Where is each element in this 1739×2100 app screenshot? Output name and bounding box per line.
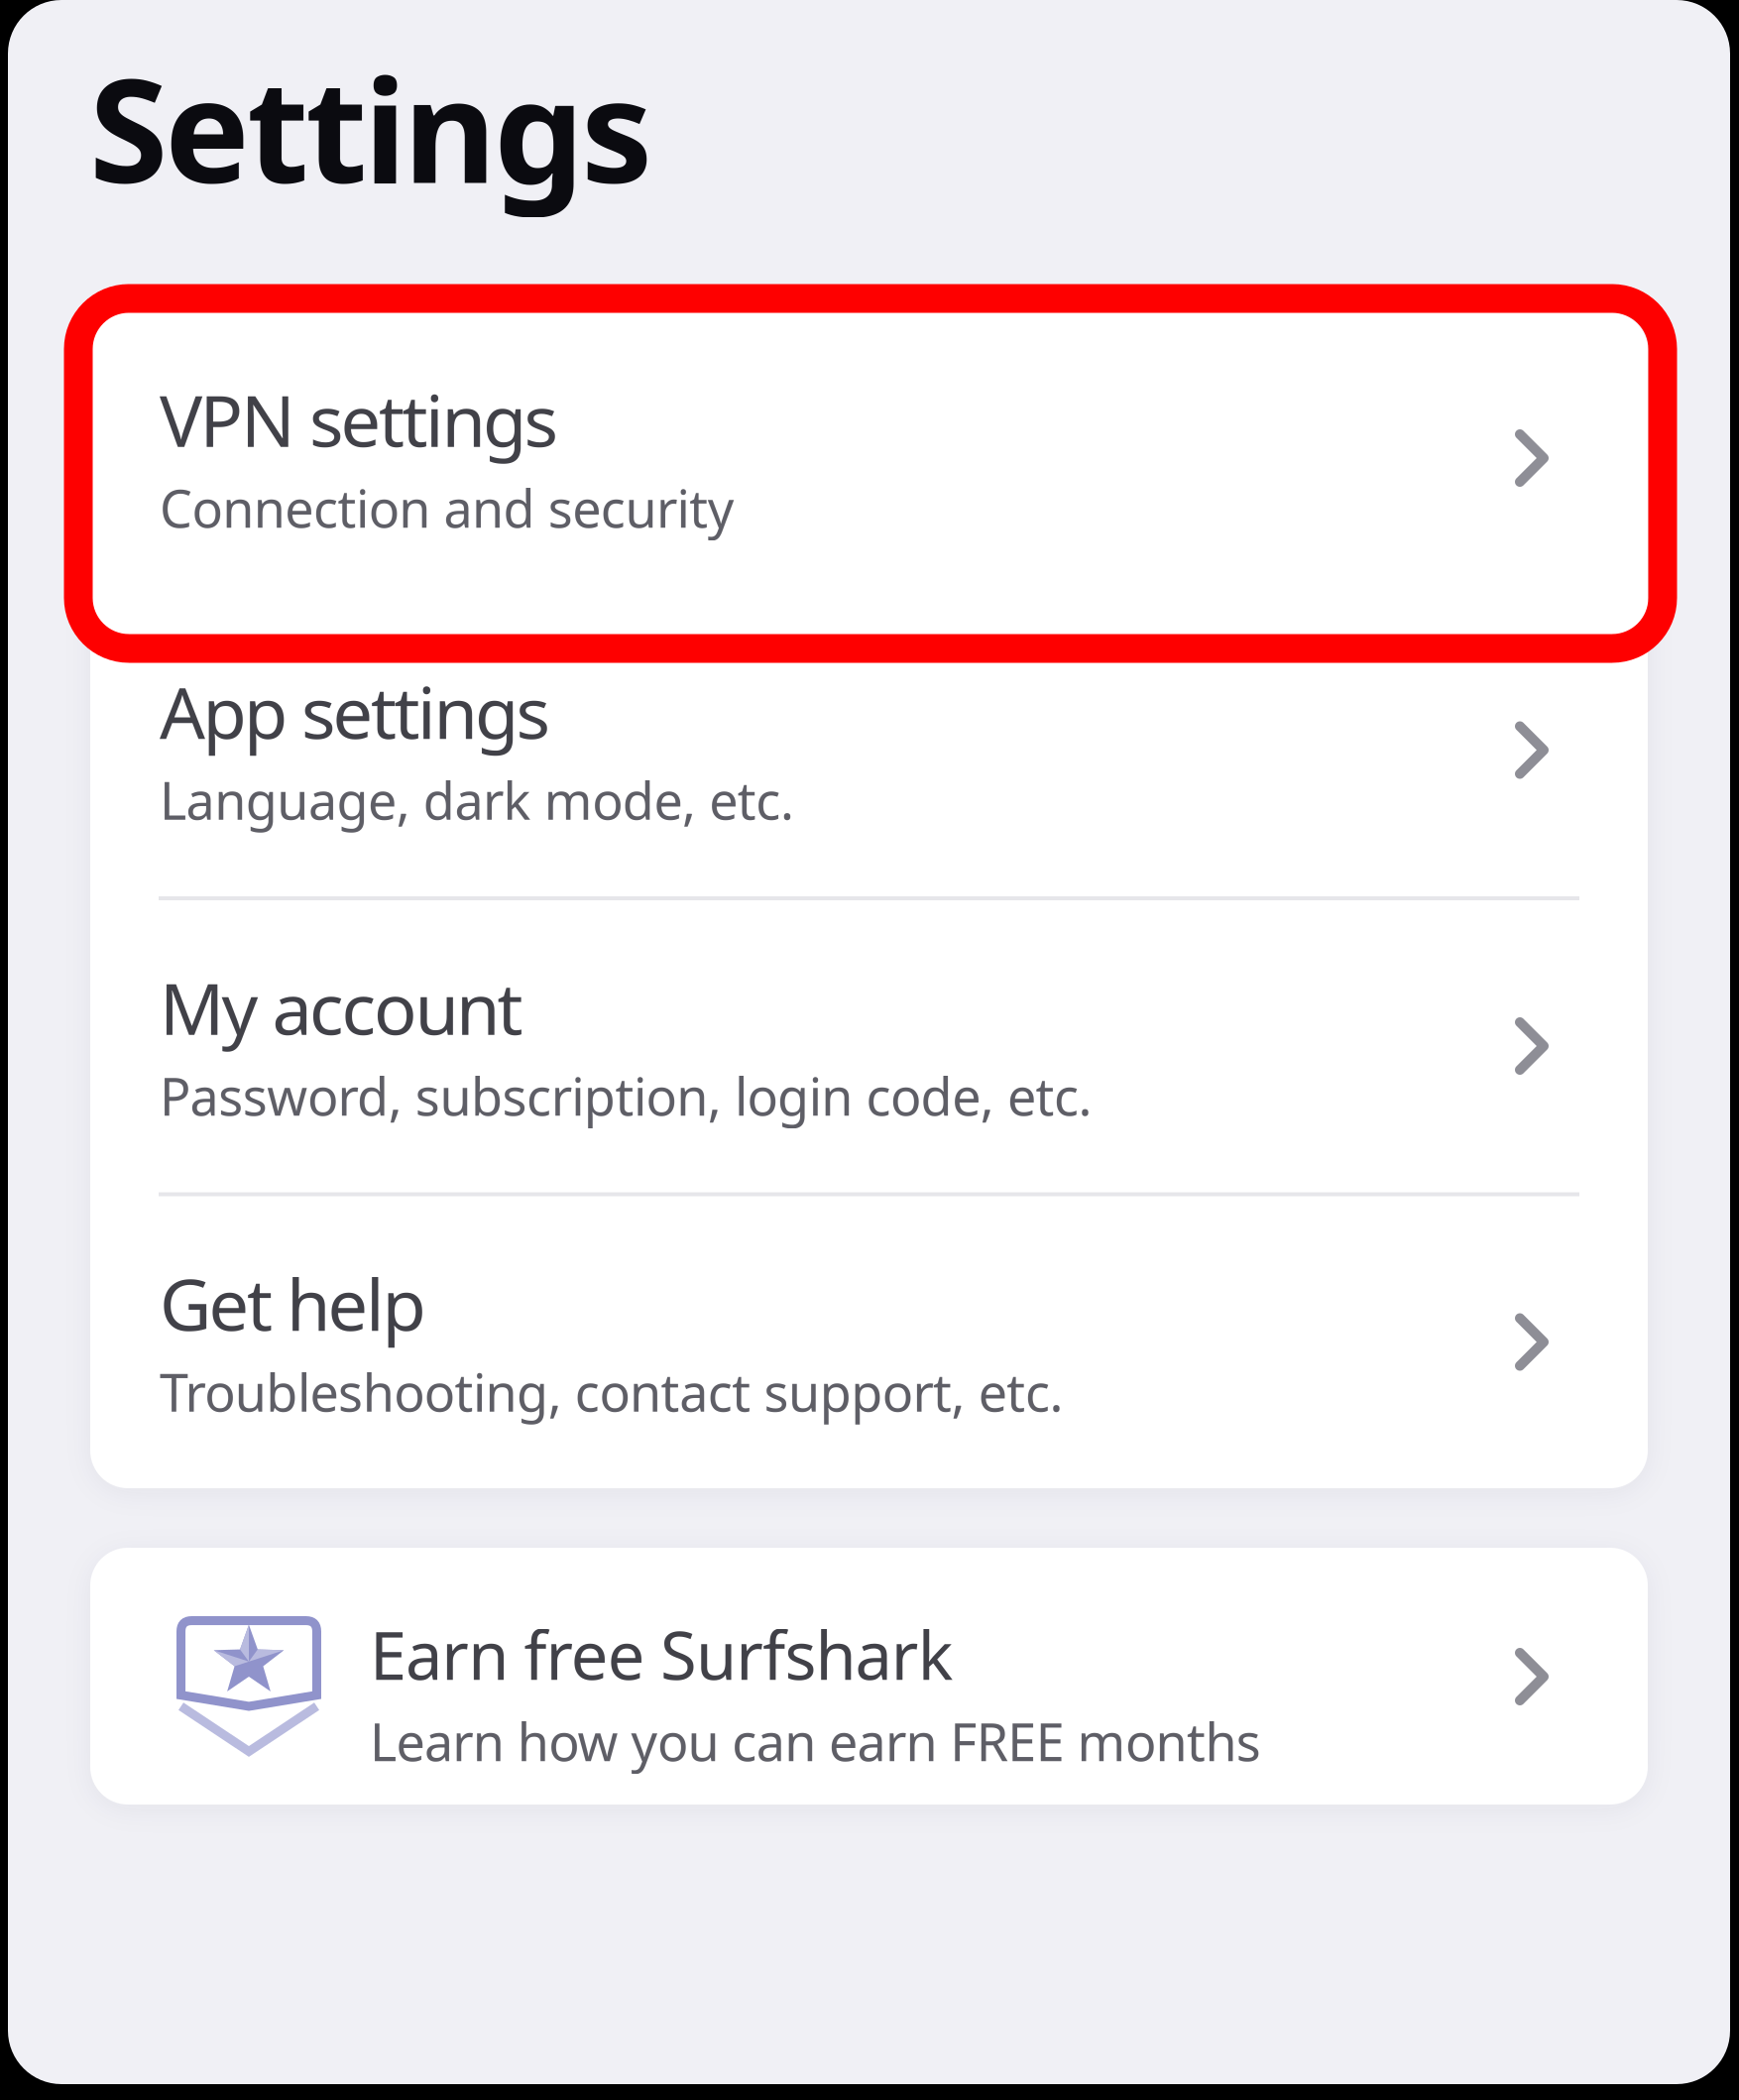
button[interactable]: Earn free Surfshark	[90, 1548, 1648, 1805]
staticText: Learn how you can earn FREE months	[370, 1707, 1261, 1775]
staticText: My account	[160, 960, 523, 1055]
staticText: App settings	[160, 664, 550, 759]
staticText: Password, subscription, login code, etc.	[160, 1062, 1092, 1130]
staticText: VPN settings	[160, 372, 558, 467]
button[interactable]: Get help	[90, 1196, 1648, 1488]
staticText: Earn free Surfshark	[370, 1610, 954, 1698]
staticText: Get help	[160, 1256, 426, 1351]
staticText: Connection and security	[160, 474, 734, 542]
button[interactable]: App settings	[90, 604, 1648, 896]
staticText: Language, dark mode, etc.	[160, 766, 794, 834]
button[interactable]: VPN settings	[90, 312, 1648, 604]
staticText: Settings	[89, 33, 652, 222]
staticText: Troubleshooting, contact support, etc.	[160, 1357, 1063, 1426]
button[interactable]: My account	[90, 900, 1648, 1192]
